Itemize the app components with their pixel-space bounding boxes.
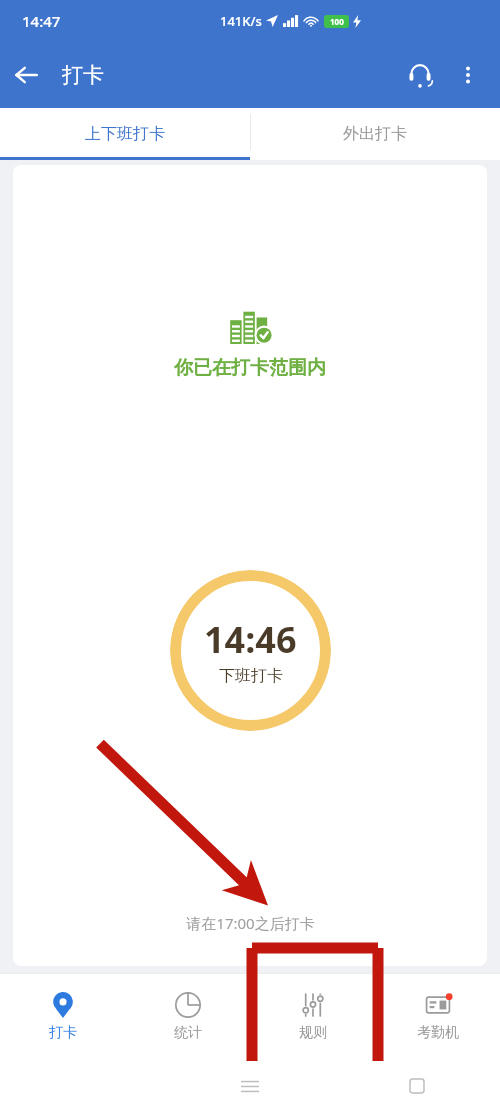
staticText: 打卡 — [49, 1024, 77, 1042]
button[interactable]: 上下班打卡 — [0, 108, 250, 160]
staticText: 外出打卡 — [343, 124, 407, 144]
staticText: 100 — [330, 16, 344, 27]
button[interactable]: 考勤机 — [375, 973, 500, 1061]
button[interactable]: Recents — [333, 1061, 500, 1111]
staticText: 下班打卡 — [219, 666, 283, 686]
button[interactable]: Customer service — [396, 51, 444, 99]
button[interactable]: Back — [0, 49, 52, 101]
button[interactable]: 14:46 — [170, 570, 331, 731]
staticText: 你已在打卡范围内 — [174, 356, 326, 380]
staticText: 上下班打卡 — [85, 124, 165, 144]
staticText: 请在17:00之后打卡 — [186, 913, 315, 933]
button[interactable]: More options — [444, 51, 492, 99]
staticText: 141K/s — [220, 12, 262, 30]
staticText: 14:46 — [204, 615, 297, 664]
staticText: 14:47 — [22, 11, 61, 31]
staticText: 统计 — [174, 1024, 202, 1042]
button[interactable]: 打卡 — [0, 973, 125, 1061]
button[interactable]: Menu — [166, 1061, 333, 1111]
button[interactable]: 规则 — [250, 973, 375, 1061]
staticText: 打卡 — [62, 62, 104, 88]
button[interactable]: 统计 — [125, 973, 250, 1061]
staticText: 规则 — [299, 1024, 327, 1042]
staticText: 考勤机 — [417, 1024, 459, 1042]
button[interactable]: 外出打卡 — [250, 108, 500, 160]
